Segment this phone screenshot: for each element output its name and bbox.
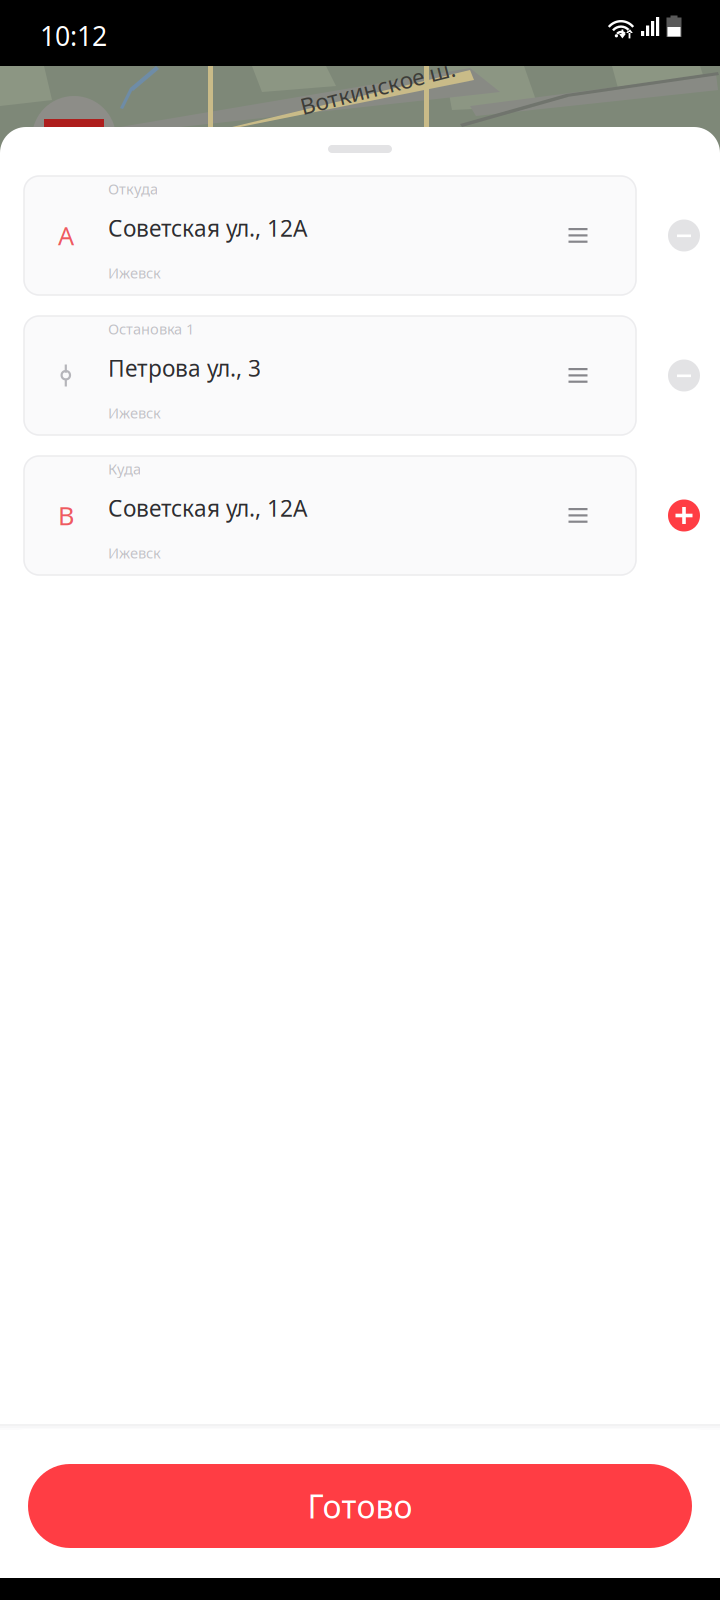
staticText: 10:12 <box>40 18 107 53</box>
staticText: B <box>58 499 74 532</box>
button[interactable]: Переместить: Откуда <box>556 213 600 257</box>
button[interactable]: Переместить: Остановка 1 <box>556 353 600 397</box>
button[interactable]: Переместить: Куда <box>556 493 600 537</box>
staticText: Готово <box>307 1485 412 1527</box>
staticText: Остановка 1 <box>108 319 194 338</box>
staticText: Ижевск <box>108 403 161 422</box>
staticText: Советская ул., 12А <box>108 213 307 243</box>
button[interactable]: Удалить: Откуда <box>668 219 700 251</box>
staticText: Советская ул., 12А <box>108 493 307 523</box>
staticText: Откуда <box>108 179 158 198</box>
button[interactable]: Остановка 1 <box>24 316 636 435</box>
staticText: Ижевск <box>108 543 161 562</box>
button[interactable]: Готово <box>28 1464 692 1548</box>
button[interactable]: B <box>24 456 636 575</box>
button[interactable]: A <box>24 176 636 295</box>
staticText: Куда <box>108 459 141 478</box>
staticText: Воткинское ш. <box>298 72 457 102</box>
staticText: Петрова ул., 3 <box>108 353 261 383</box>
staticText: A <box>58 219 74 252</box>
button[interactable]: Удалить: Остановка 1 <box>668 359 700 391</box>
staticText: Ижевск <box>108 263 161 282</box>
button[interactable]: Добавить остановку <box>668 499 700 531</box>
